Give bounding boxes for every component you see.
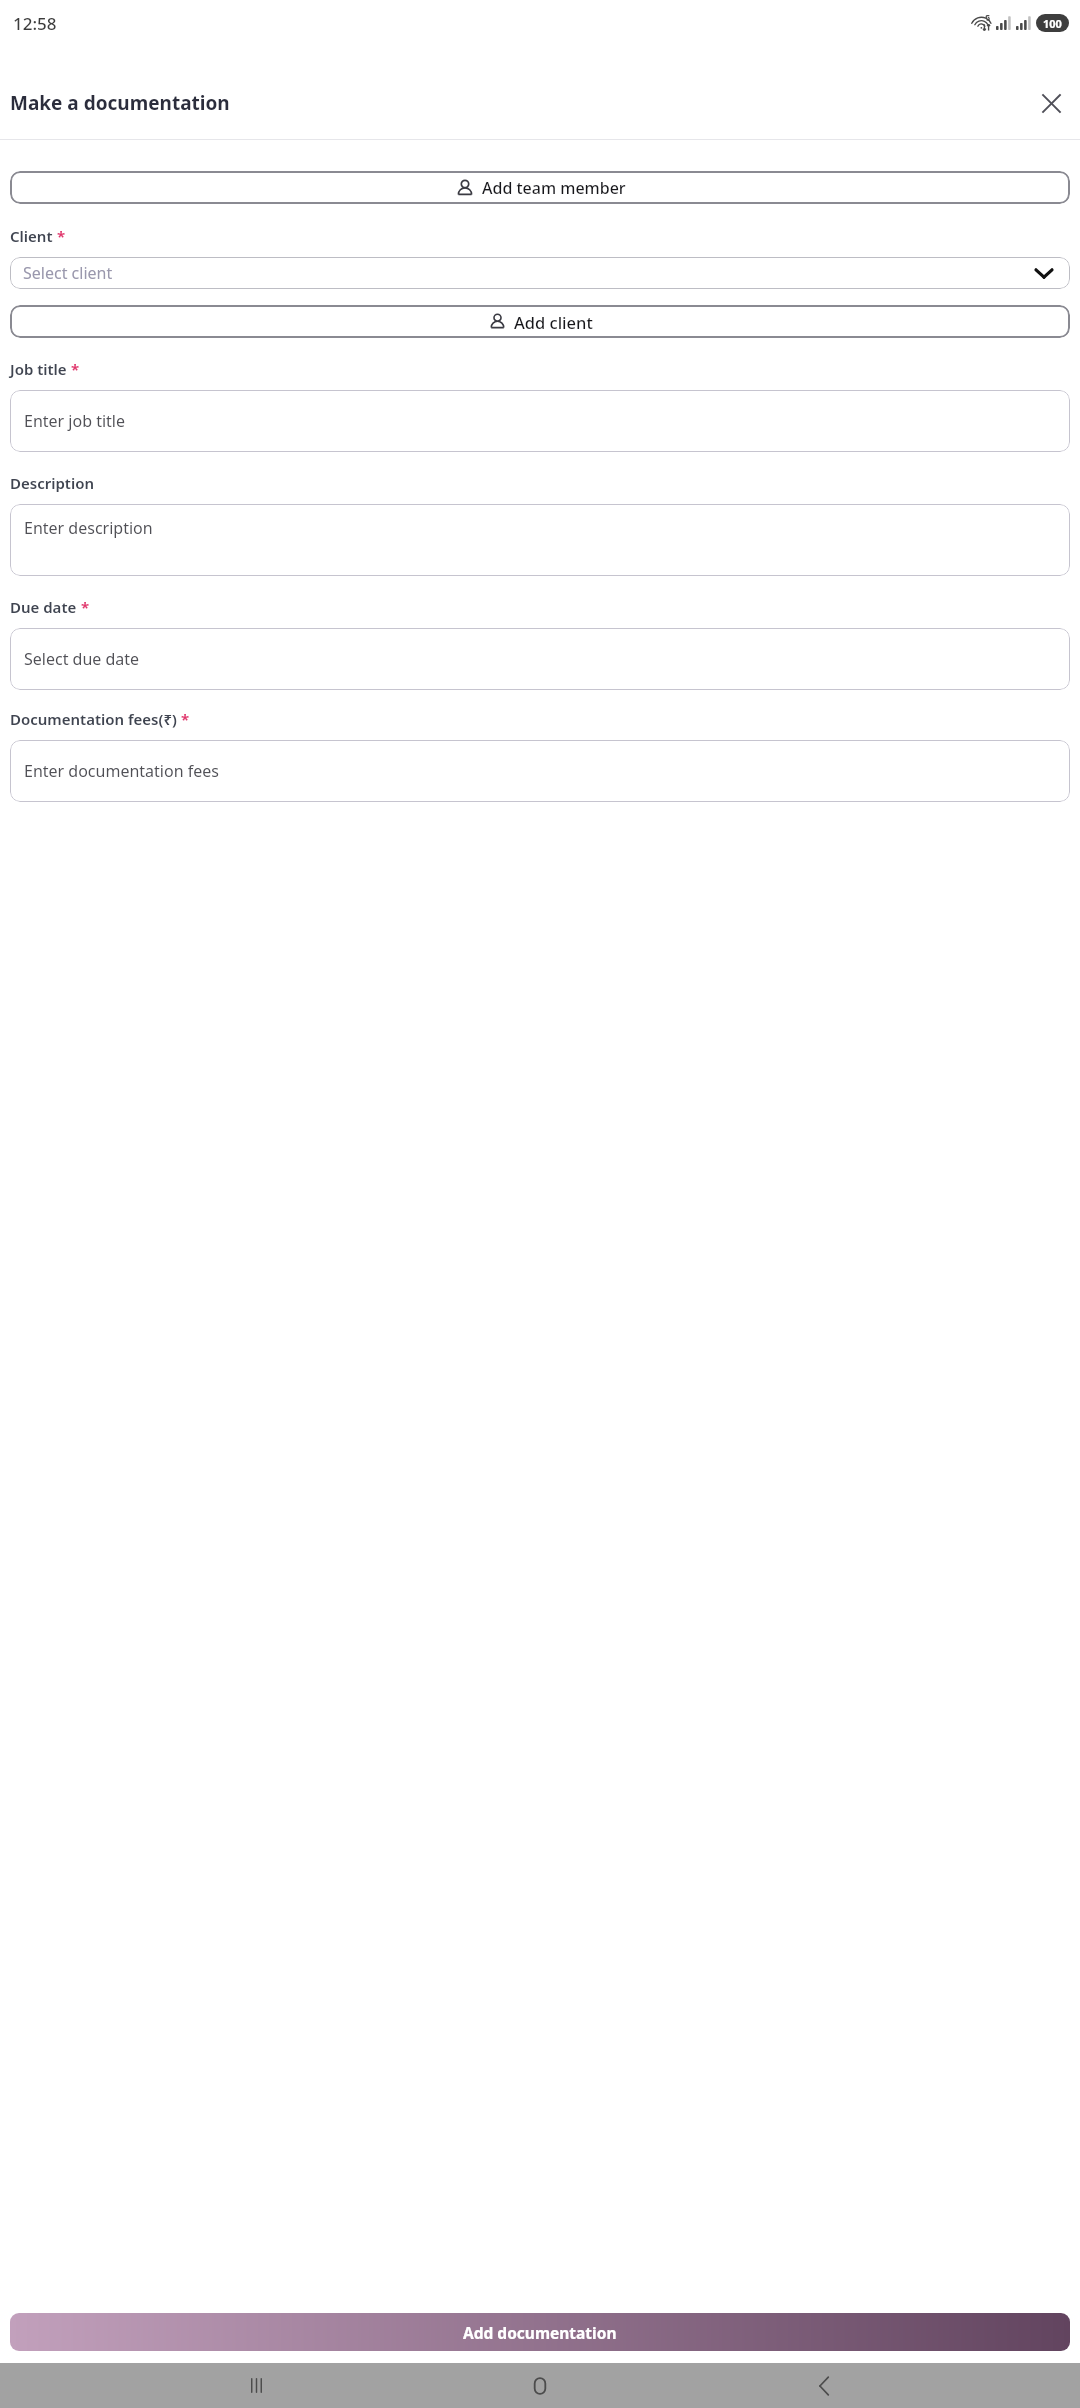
staticText: Enter description — [24, 517, 153, 539]
staticText: 12:58 — [13, 12, 57, 35]
staticText: Description — [10, 473, 94, 493]
staticText: Add documentation — [463, 2322, 617, 2343]
staticText: Make a documentation — [10, 90, 230, 116]
button[interactable]: Home — [512, 2363, 568, 2408]
button[interactable]: Enter description — [10, 504, 1070, 576]
button[interactable]: Add client — [10, 305, 1070, 338]
staticText: Job title — [10, 359, 67, 379]
button[interactable]: Enter job title — [10, 390, 1070, 452]
staticText: Select due date — [24, 648, 140, 670]
staticText: Select client — [23, 262, 113, 284]
button[interactable]: Back — [796, 2363, 852, 2408]
staticText: Add team member — [482, 177, 626, 199]
staticText: * — [181, 709, 190, 729]
button[interactable]: Select client — [10, 257, 1070, 289]
staticText: * — [71, 359, 80, 379]
button[interactable]: Add team member — [10, 171, 1070, 204]
staticText: Documentation fees(₹) — [10, 709, 177, 729]
button[interactable]: Recent apps — [228, 2363, 284, 2408]
button[interactable]: Select due date — [10, 628, 1070, 690]
staticText: Add client — [514, 311, 593, 333]
staticText: * — [81, 597, 90, 617]
button[interactable]: Add documentation — [10, 2313, 1070, 2351]
staticText: 100 — [1043, 16, 1062, 31]
button[interactable]: Enter documentation fees — [10, 740, 1070, 802]
button[interactable]: Close — [1032, 84, 1070, 122]
staticText: * — [57, 226, 66, 246]
staticText: Due date — [10, 597, 77, 617]
staticText: Enter job title — [24, 410, 125, 432]
staticText: Enter documentation fees — [24, 760, 219, 782]
staticText: Client — [10, 226, 53, 246]
